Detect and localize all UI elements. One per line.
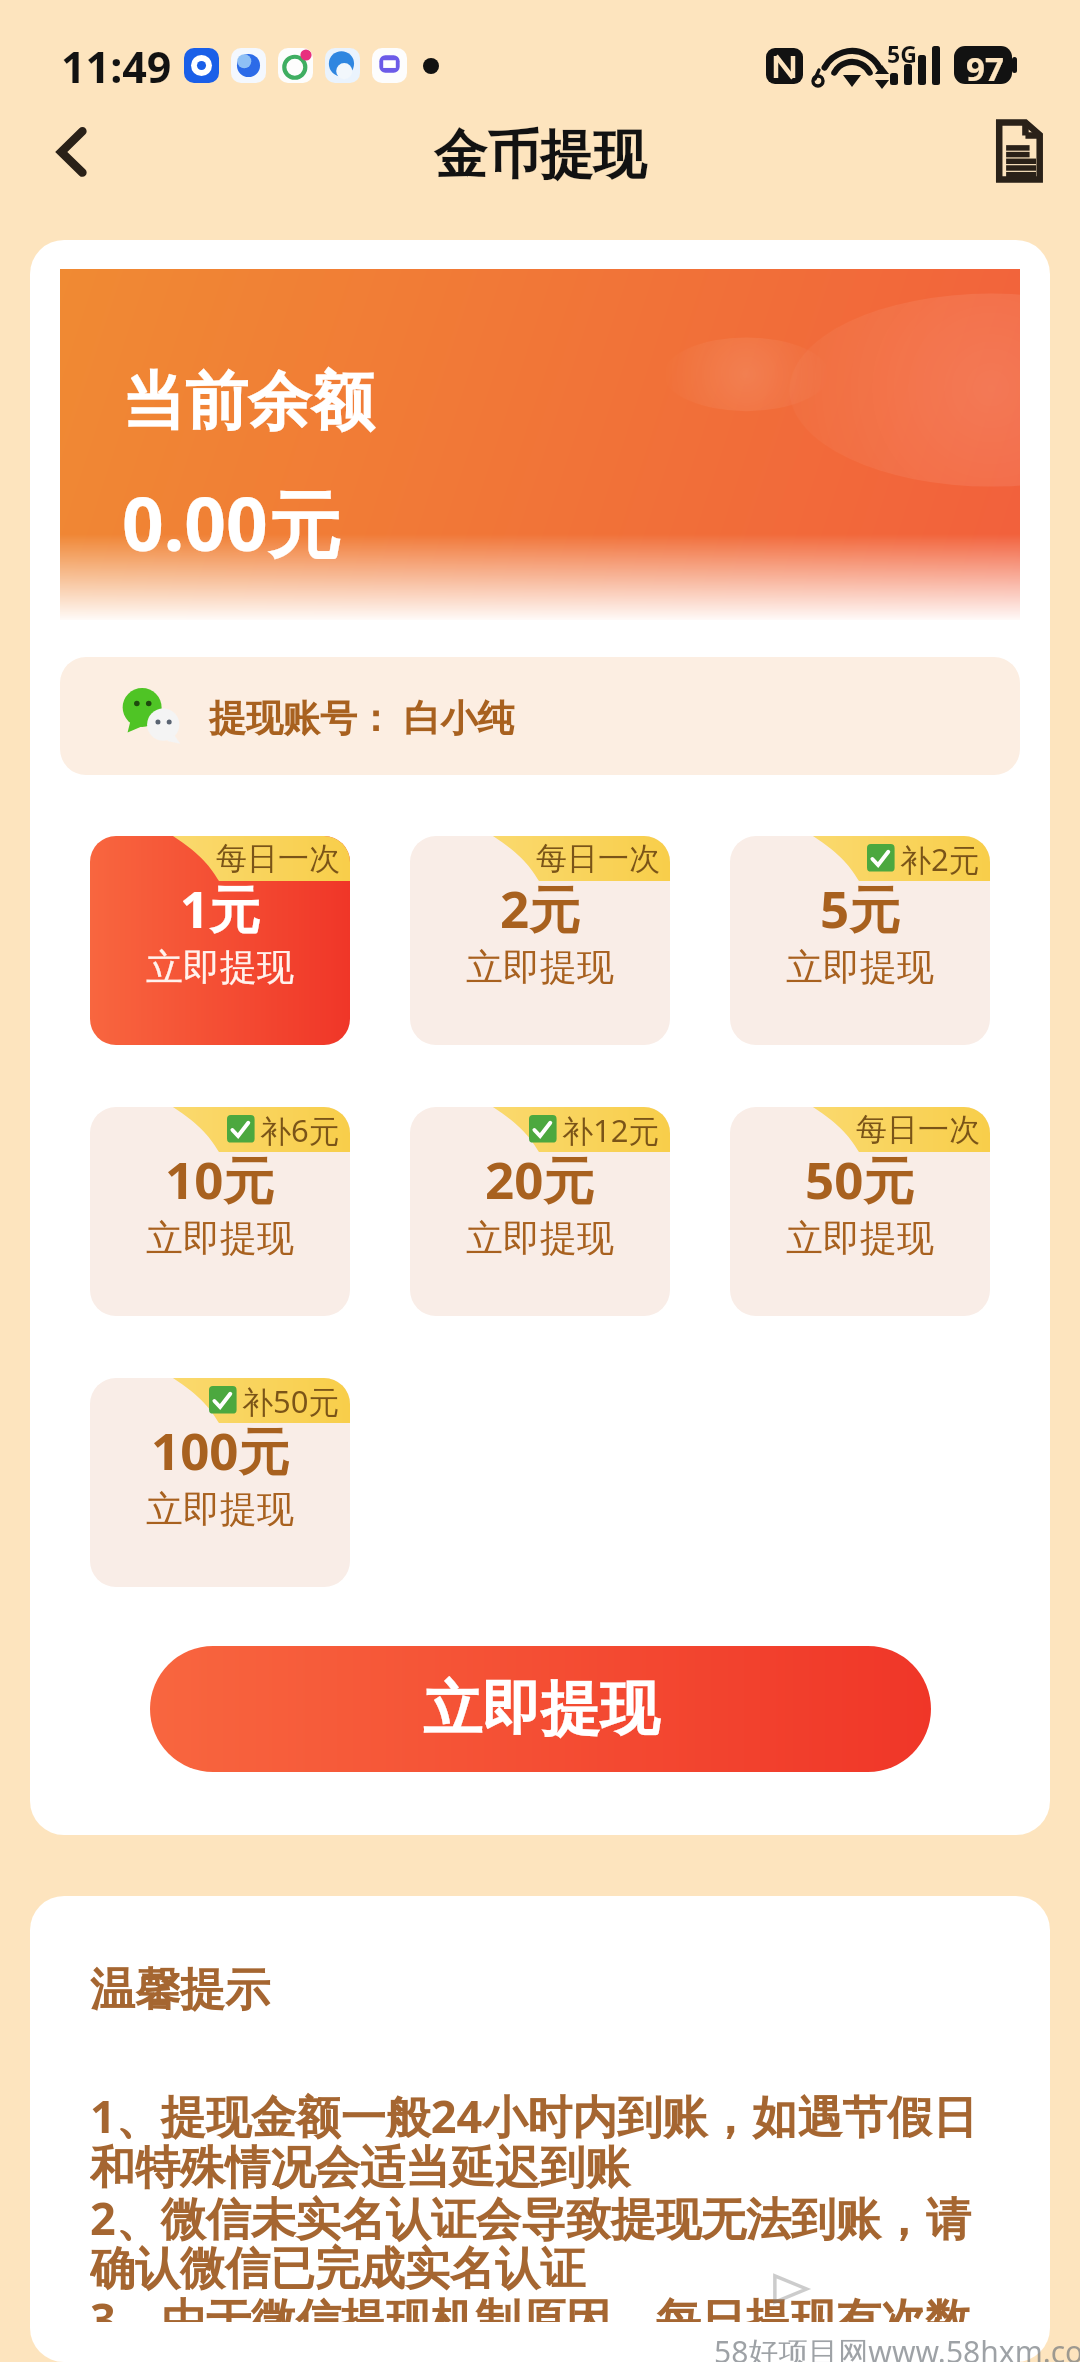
staticText: 立即提现 (146, 1215, 294, 1262)
staticText: 补12元 (562, 1109, 660, 1151)
staticText: 立即提现 (466, 1215, 614, 1262)
staticText: 立即提现 (423, 1672, 659, 1746)
button[interactable]: 补50元 (90, 1378, 350, 1587)
staticText: 20元 (485, 1144, 595, 1214)
button[interactable]: 每日一次 (90, 836, 350, 1045)
staticText: 立即提现 (786, 1215, 934, 1262)
staticText: 2元 (500, 873, 581, 943)
staticText: 补6元 (260, 1109, 340, 1151)
button[interactable]: 提现账号： 白小纯 (60, 657, 1020, 775)
staticText: 当前余额 (122, 362, 374, 441)
staticText: 5元 (820, 873, 901, 943)
staticText: 0.00元 (122, 473, 341, 573)
button[interactable]: 补2元 (730, 836, 990, 1045)
staticText: 58好项目网www.58hxm.com (714, 2331, 1080, 2362)
staticText: 50元 (805, 1144, 915, 1214)
staticText: 1元 (180, 873, 261, 943)
staticText: 97 (966, 46, 1004, 91)
staticText: 10元 (165, 1144, 275, 1214)
staticText: 补50元 (242, 1380, 340, 1422)
staticText: 1、提现金额一般24小时内到账，如遇节假日 和特殊情况会适当延迟到账 2、微信未… (90, 2085, 978, 2322)
staticText: 每日一次 (216, 839, 340, 878)
staticText: 温馨提示 (90, 1962, 270, 2019)
button[interactable]: Back (34, 117, 102, 185)
staticText: 补2元 (900, 838, 980, 880)
button[interactable]: 补6元 (90, 1107, 350, 1316)
staticText: 提现账号： 白小纯 (209, 691, 515, 742)
staticText: 立即提现 (786, 944, 934, 991)
button[interactable]: Withdrawal records (986, 118, 1052, 184)
button[interactable]: 每日一次 (730, 1107, 990, 1316)
staticText: 11:49 (61, 37, 172, 96)
button[interactable]: 立即提现 (150, 1646, 931, 1772)
button[interactable]: 每日一次 (410, 836, 670, 1045)
staticText: 每日一次 (536, 839, 660, 878)
staticText: 立即提现 (466, 944, 614, 991)
staticText: 每日一次 (856, 1110, 980, 1149)
staticText: 金币提现 (434, 122, 646, 189)
button[interactable]: 补12元 (410, 1107, 670, 1316)
staticText: 立即提现 (146, 944, 294, 991)
staticText: 100元 (151, 1415, 290, 1485)
staticText: 5G (887, 38, 917, 69)
staticText: 立即提现 (146, 1486, 294, 1533)
